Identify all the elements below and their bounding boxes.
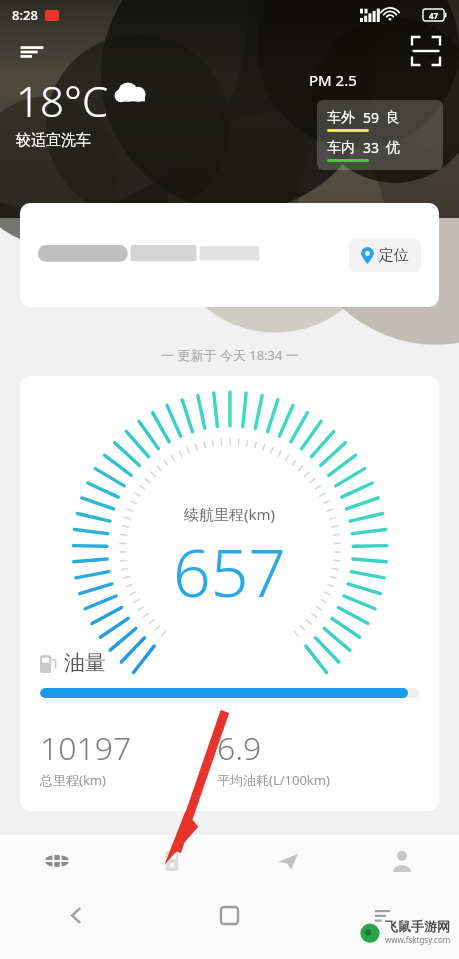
- staticText: www.fsktgsy.com: [385, 934, 451, 945]
- button[interactable]: Profile: [344, 835, 459, 887]
- button[interactable]: Back: [0, 887, 153, 943]
- staticText: 良: [386, 109, 400, 127]
- staticText: PM 2.5: [309, 70, 357, 90]
- button[interactable]: 定位: [20, 203, 439, 307]
- staticText: 8:28: [12, 6, 38, 24]
- staticText: 油量: [64, 650, 106, 676]
- button[interactable]: Navigation: [229, 835, 344, 887]
- button[interactable]: Menu: [10, 30, 54, 74]
- button[interactable]: Recents: [306, 887, 459, 943]
- staticText: 10197: [40, 726, 132, 770]
- staticText: 飞鼠手游网: [385, 918, 450, 934]
- button[interactable]: 车外: [317, 100, 443, 170]
- button[interactable]: 定位: [349, 239, 421, 272]
- staticText: 657: [173, 526, 287, 616]
- button[interactable]: 续航里程(km): [20, 376, 439, 811]
- staticText: 平均油耗(L/100km): [217, 771, 330, 789]
- staticText: 47: [429, 10, 439, 21]
- staticText: 59: [363, 108, 380, 127]
- button[interactable]: Car status: [114, 835, 229, 887]
- staticText: 定位: [379, 246, 409, 265]
- staticText: 6.9: [217, 726, 262, 770]
- staticText: 33: [363, 138, 380, 157]
- button[interactable]: Vehicle: [0, 835, 114, 887]
- staticText: 总里程(km): [40, 771, 106, 789]
- staticText: 续航里程(km): [184, 504, 276, 524]
- button[interactable]: Home: [153, 887, 306, 943]
- staticText: 较适宜洗车: [16, 131, 91, 150]
- button[interactable]: Scan: [403, 28, 449, 74]
- staticText: 车外: [327, 109, 355, 127]
- staticText: 一 更新于 今天 18:34 一: [161, 346, 299, 364]
- staticText: 车内: [327, 139, 355, 157]
- staticText: 18°C: [16, 72, 109, 129]
- staticText: 优: [386, 139, 400, 157]
